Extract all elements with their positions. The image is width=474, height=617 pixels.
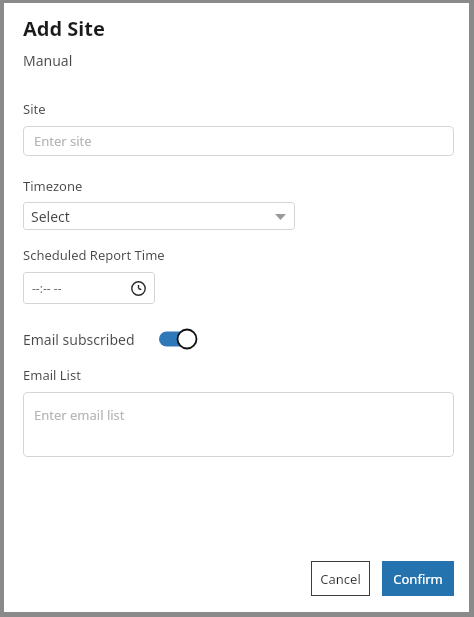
button[interactable]: Confirm [382,561,454,596]
staticText: --:-- -- [32,280,62,296]
staticText: Add Site [23,15,105,42]
button[interactable]: Select [23,202,295,230]
staticText: Email subscribed [23,330,135,349]
staticText: Enter email list [34,406,125,424]
staticText: Confirm [393,570,443,588]
button[interactable]: Pick time [131,281,146,296]
staticText: Email List [23,366,81,384]
staticText: Site [23,100,46,118]
button[interactable]: --:-- -- [23,272,155,304]
other: Email subscribed toggle [159,327,199,351]
staticText: Timezone [23,177,83,195]
staticText: Cancel [320,570,361,588]
staticText: Scheduled Report Time [23,246,165,264]
button[interactable]: Email subscribed [23,324,199,354]
button[interactable]: Enter site [23,126,454,156]
staticText: Select [31,207,70,226]
staticText: Enter site [34,132,92,150]
staticText: Manual [23,51,73,70]
button[interactable]: Enter email list [23,392,454,457]
button[interactable]: Cancel [311,561,370,596]
